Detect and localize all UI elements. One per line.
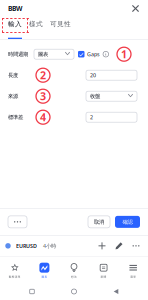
- button[interactable]: 可見性: [50, 17, 71, 39]
- staticText: 1: [121, 47, 127, 61]
- staticText: 20: [90, 72, 96, 79]
- button[interactable]: 2: [86, 112, 137, 122]
- button[interactable]: 觀察清單: [0, 257, 30, 283]
- staticText: 收盤: [90, 93, 100, 99]
- button[interactable]: Add indicator: [96, 240, 108, 252]
- button[interactable]: 樣式: [29, 17, 43, 39]
- button[interactable]: Close: [129, 2, 142, 15]
- staticText: 觀察清單: [9, 275, 21, 278]
- button[interactable]: 圖表: [30, 257, 59, 283]
- staticText: 4: [40, 110, 46, 124]
- button[interactable]: Back: [106, 284, 126, 298]
- staticText: EURUSD: [16, 242, 37, 249]
- button[interactable]: Recent apps: [22, 284, 42, 298]
- staticText: 輸入: [8, 20, 22, 28]
- button[interactable]: 新聞: [89, 257, 118, 283]
- staticText: 選單: [130, 275, 136, 278]
- button[interactable]: Home: [64, 284, 84, 298]
- staticText: 時間週期: [8, 51, 28, 57]
- button[interactable]: More: [130, 240, 142, 252]
- staticText: 2: [40, 68, 46, 82]
- staticText: Gaps: [87, 51, 100, 58]
- staticText: 取消: [94, 219, 104, 225]
- staticText: 圖表: [41, 275, 47, 278]
- staticText: 圖表: [38, 51, 48, 57]
- button[interactable]: More options: [8, 216, 27, 228]
- button[interactable]: 收盤: [86, 91, 137, 101]
- staticText: 想法: [71, 275, 77, 278]
- staticText: 3: [40, 89, 46, 103]
- button[interactable]: Drawing tools: [113, 240, 125, 252]
- button[interactable]: 確認: [115, 216, 140, 228]
- button[interactable]: Gaps: [78, 51, 100, 58]
- staticText: 樣式: [29, 20, 43, 28]
- button[interactable]: 圖表: [34, 49, 74, 59]
- staticText: 2: [90, 114, 93, 121]
- button[interactable]: 取消: [88, 216, 110, 228]
- button[interactable]: 選單: [118, 257, 148, 283]
- staticText: 4小時: [43, 242, 56, 249]
- staticText: 可見性: [50, 20, 71, 28]
- staticText: 長度: [8, 72, 18, 78]
- button[interactable]: 輸入: [8, 17, 22, 39]
- staticText: 標準差: [8, 114, 23, 120]
- button[interactable]: 想法: [59, 257, 89, 283]
- button[interactable]: 20: [86, 70, 137, 80]
- staticText: 來源: [8, 93, 18, 99]
- staticText: BBW: [8, 4, 22, 13]
- staticText: 新聞: [101, 275, 107, 278]
- staticText: 確認: [122, 219, 132, 225]
